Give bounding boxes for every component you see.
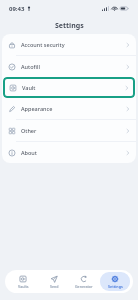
button[interactable]: Settings	[100, 272, 130, 291]
button[interactable]: Vaults	[8, 272, 38, 291]
staticText: Generator	[75, 284, 93, 289]
staticText: About	[21, 149, 37, 156]
staticText: Appearance	[21, 105, 53, 112]
button[interactable]: Send	[39, 272, 69, 291]
button[interactable]: Autofill	[2, 56, 136, 77]
staticText: Send	[50, 284, 59, 289]
button[interactable]: Generator	[69, 272, 99, 291]
button[interactable]: Account security	[2, 34, 136, 55]
staticText: 09:43	[9, 5, 25, 13]
staticText: Other	[21, 127, 37, 134]
staticText: Vault	[22, 84, 36, 91]
staticText: Account security	[21, 41, 65, 48]
button[interactable]: Other	[2, 120, 136, 141]
staticText: Autofill	[21, 63, 40, 70]
staticText: Settings	[55, 21, 84, 31]
staticText: Vaults	[18, 284, 29, 289]
button[interactable]: About	[2, 142, 136, 163]
button[interactable]: Appearance	[2, 98, 136, 119]
staticText: Settings	[108, 284, 123, 289]
button[interactable]: Vault	[3, 77, 135, 98]
